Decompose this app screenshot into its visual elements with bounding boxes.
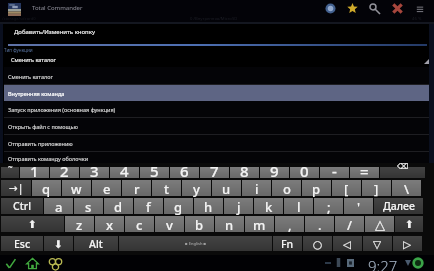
button[interactable]: \ <box>392 180 421 196</box>
button[interactable]: ⌫ <box>380 167 425 178</box>
staticText: l <box>297 198 301 214</box>
button[interactable]: Далее <box>374 198 423 214</box>
button[interactable]: p <box>302 180 331 196</box>
button[interactable]: →| <box>1 180 31 196</box>
staticText: i <box>255 180 259 196</box>
staticText: ~ <box>8 161 13 172</box>
button[interactable]: j <box>224 198 253 214</box>
staticText: ] <box>374 180 379 196</box>
staticText: = <box>360 161 369 172</box>
button[interactable]: Отправить приложению <box>4 135 429 152</box>
button[interactable]: ▪ English ▪ <box>119 236 272 251</box>
button[interactable]: s <box>74 198 103 214</box>
staticText: v <box>166 216 173 232</box>
button[interactable]: More options <box>415 4 425 14</box>
button[interactable]: q <box>32 180 61 196</box>
button[interactable]: m <box>245 216 274 232</box>
button[interactable]: Alt <box>74 236 118 251</box>
button[interactable]: 7 <box>200 167 229 178</box>
button[interactable]: Отправить команду оболочки <box>4 152 429 165</box>
button[interactable]: 2 <box>50 167 79 178</box>
button[interactable]: t <box>152 180 181 196</box>
button[interactable]: / <box>335 216 364 232</box>
staticText: Тип функции <box>4 47 33 53</box>
button[interactable]: f <box>134 198 163 214</box>
button[interactable]: 1 <box>20 167 49 178</box>
button[interactable]: 9 <box>260 167 289 178</box>
button[interactable]: Favorites <box>347 3 358 14</box>
button[interactable]: i <box>242 180 271 196</box>
button[interactable]: g <box>164 198 193 214</box>
button[interactable]: Запуск приложения (основная функция) <box>4 101 429 118</box>
button[interactable]: Сменить каталог <box>4 67 429 85</box>
button[interactable]: = <box>350 167 379 178</box>
button[interactable]: y <box>182 180 211 196</box>
button[interactable]: ] <box>362 180 391 196</box>
button[interactable]: 0 <box>290 167 319 178</box>
staticText: Отправить команду оболочки <box>8 155 89 162</box>
button[interactable]: , <box>275 216 304 232</box>
button[interactable]: Search <box>369 3 381 15</box>
button[interactable]: 6 <box>170 167 199 178</box>
button[interactable]: u <box>212 180 241 196</box>
button[interactable]: ~ <box>1 167 19 178</box>
button[interactable]: ◁ <box>333 236 362 251</box>
button[interactable]: n <box>215 216 244 232</box>
button[interactable]: d <box>104 198 133 214</box>
staticText: Alt <box>89 237 103 251</box>
button[interactable]: △ <box>365 216 394 232</box>
button[interactable]: Esc <box>1 236 43 251</box>
button[interactable]: v <box>155 216 184 232</box>
button[interactable]: Recent <box>49 257 62 270</box>
button[interactable]: 4 <box>110 167 139 178</box>
button[interactable]: 3 <box>80 167 109 178</box>
button[interactable]: ; <box>314 198 343 214</box>
staticText: p <box>312 180 321 196</box>
button[interactable]: c <box>125 216 154 232</box>
staticText: u <box>222 180 231 196</box>
button[interactable]: ' <box>344 198 373 214</box>
button[interactable]: Открыть файл с помощью <box>4 118 429 135</box>
button[interactable]: Confirm <box>4 257 17 270</box>
staticText: y <box>193 180 200 196</box>
staticText: q <box>42 180 51 196</box>
button[interactable]: z <box>65 216 94 232</box>
button[interactable]: k <box>254 198 283 214</box>
button[interactable]: r <box>122 180 151 196</box>
button[interactable]: . <box>305 216 334 232</box>
staticText: x <box>106 216 114 232</box>
staticText: Fn <box>281 237 294 251</box>
staticText: \ <box>404 180 410 196</box>
button[interactable]: ⬆ <box>1 216 64 232</box>
staticText: 2 <box>60 161 69 172</box>
button[interactable]: Close <box>392 3 403 14</box>
staticText: e <box>103 180 111 196</box>
button[interactable]: o <box>272 180 301 196</box>
button[interactable]: Home <box>26 257 39 270</box>
button[interactable]: ⬆ <box>395 216 423 232</box>
button[interactable]: Fn <box>273 236 302 251</box>
staticText: ⬆ <box>28 218 37 230</box>
staticText: m <box>253 216 266 232</box>
button[interactable]: ▷ <box>393 236 422 251</box>
button[interactable]: 5 <box>140 167 169 178</box>
button[interactable]: ▽ <box>363 236 392 251</box>
button[interactable]: Внутренняя команда <box>4 85 429 101</box>
staticText: ▪ English ▪ <box>185 241 207 246</box>
button[interactable]: l <box>284 198 313 214</box>
button[interactable]: h <box>194 198 223 214</box>
button[interactable]: 8 <box>230 167 259 178</box>
button[interactable]: e <box>92 180 121 196</box>
button[interactable]: [ <box>332 180 361 196</box>
button[interactable]: Ctrl <box>1 198 43 214</box>
button[interactable]: w <box>62 180 91 196</box>
button[interactable]: Network <box>325 3 336 14</box>
button[interactable]: a <box>44 198 73 214</box>
staticText: b <box>195 216 204 232</box>
staticText: ▷ <box>403 238 412 250</box>
button[interactable]: x <box>95 216 124 232</box>
button[interactable]: ⬇ <box>44 236 73 251</box>
button[interactable]: ○ <box>303 236 332 251</box>
button[interactable]: - <box>320 167 349 178</box>
button[interactable]: b <box>185 216 214 232</box>
